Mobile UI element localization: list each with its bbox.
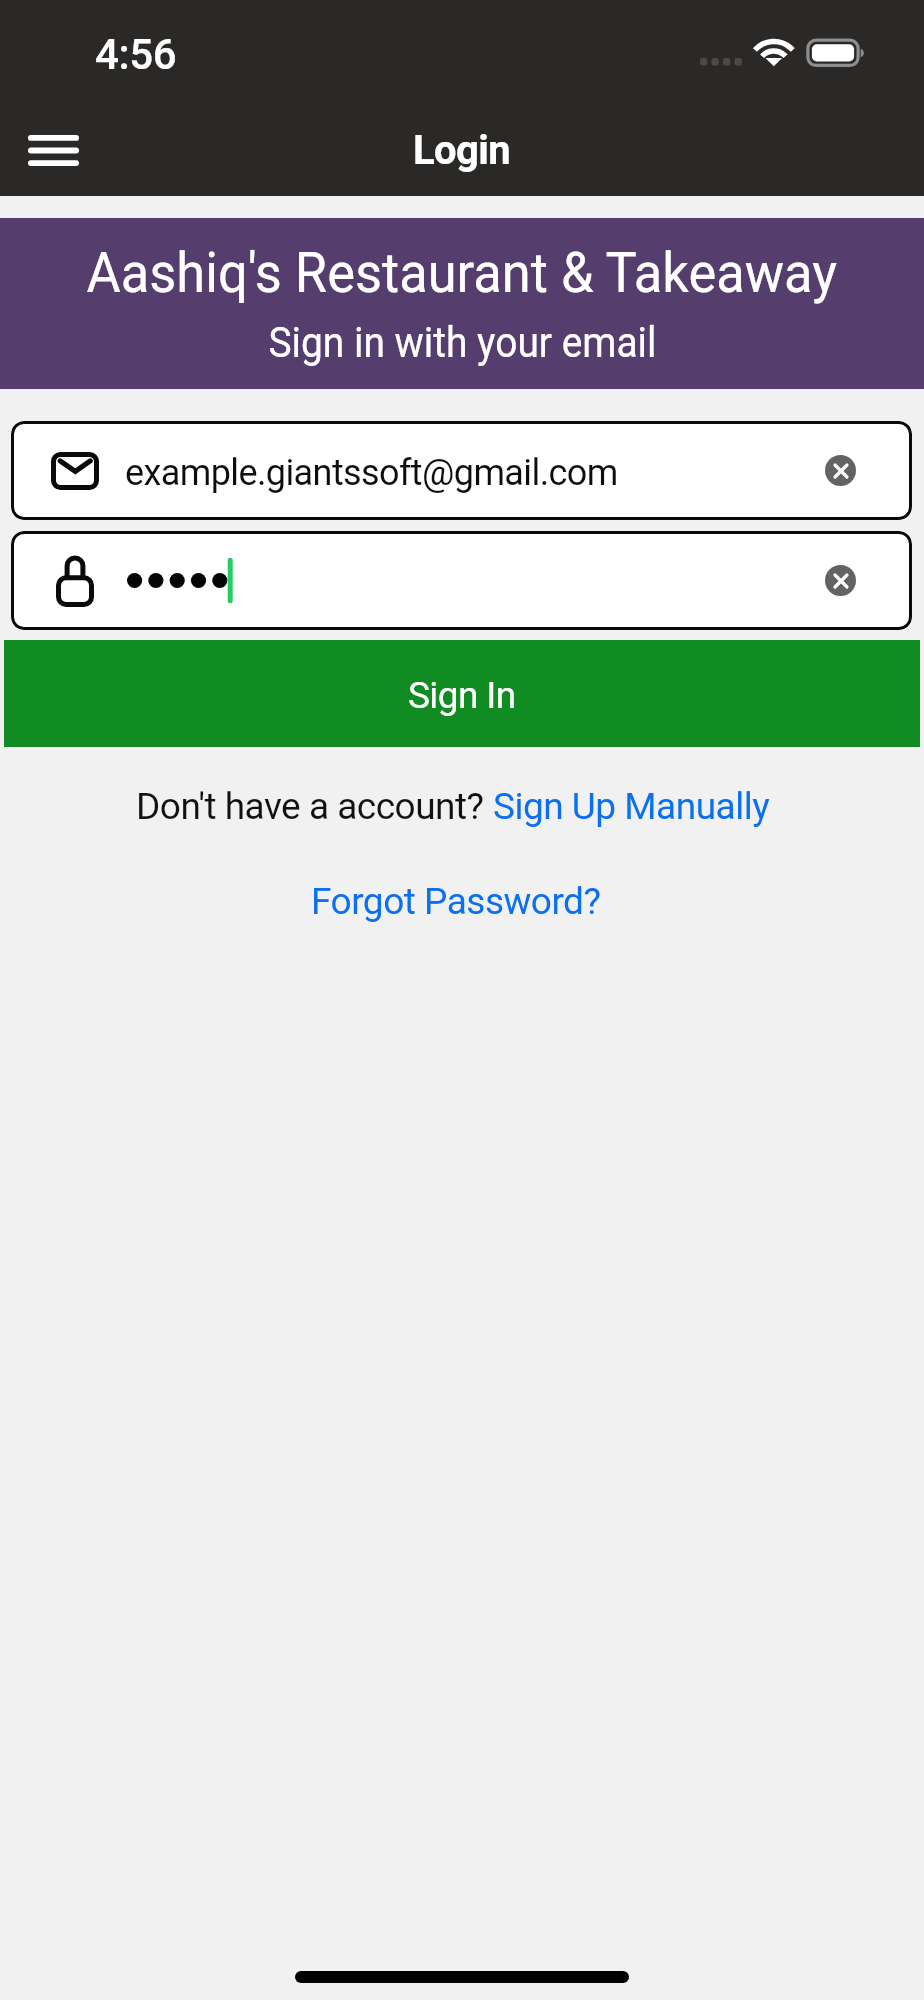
button[interactable]: Clear text bbox=[825, 455, 856, 486]
staticText: example.giantssoft@gmail.com bbox=[125, 452, 618, 494]
staticText: Forgot Password? bbox=[311, 880, 601, 923]
staticText: Sign In bbox=[408, 674, 516, 717]
staticText: Aashiq's Restaurant & Takeaway bbox=[86, 241, 837, 305]
staticText: Sign Up Manually bbox=[493, 785, 770, 828]
staticText: 4:56 bbox=[95, 30, 177, 79]
staticText: Don't have a account? bbox=[136, 785, 493, 828]
button[interactable]: Forgot Password bbox=[311, 880, 601, 923]
button[interactable]: Sign In bbox=[4, 640, 920, 747]
button[interactable]: Open navigation menu bbox=[9, 105, 97, 196]
button[interactable]: Sign Up Manually bbox=[493, 785, 770, 828]
button[interactable]: Clear text bbox=[11, 531, 912, 630]
staticText: Sign in with your email bbox=[268, 317, 657, 367]
button[interactable]: example.giantssoft@gmail.com bbox=[11, 421, 912, 520]
button[interactable]: Clear text bbox=[825, 565, 856, 596]
staticText: Login bbox=[413, 127, 511, 174]
